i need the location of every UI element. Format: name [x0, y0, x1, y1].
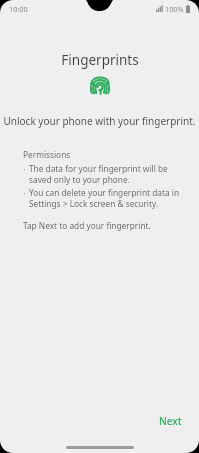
staticText: Next [159, 414, 182, 428]
staticText: Tap Next to add your fingerprint. [23, 220, 151, 231]
other: Fingerprint [90, 77, 110, 100]
staticText: · [23, 163, 26, 175]
button[interactable]: Next [148, 407, 193, 435]
staticText: 10:00 [9, 4, 28, 14]
staticText: · [23, 187, 26, 199]
staticText: You can delete your fingerprint data in … [29, 187, 187, 209]
staticText: 100% [165, 4, 184, 14]
staticText: Fingerprints [61, 51, 139, 69]
staticText: The data for your fingerprint will be sa… [29, 163, 187, 185]
staticText: Permissions [23, 149, 71, 160]
staticText: Unlock your phone with your fingerprint. [3, 114, 196, 128]
